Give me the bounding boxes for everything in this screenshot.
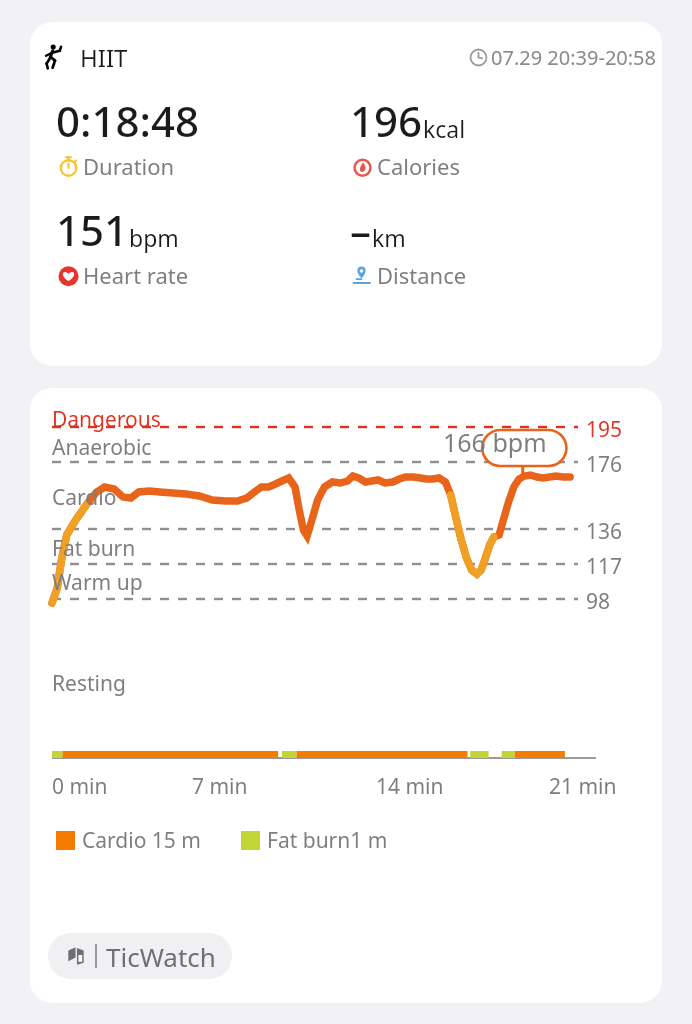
staticText: 117 [586,552,623,581]
other: Duration [56,154,81,179]
staticText: 14 min [376,772,444,801]
staticText: Distance [377,260,467,290]
staticText: 151 [56,201,129,258]
staticText: bpm [129,222,179,253]
staticText: Anaerobic [52,433,152,462]
staticText: Warm up [52,568,143,597]
staticText: kcal [423,113,466,144]
staticText: 195 [586,415,623,444]
other: Distance [350,263,375,288]
other: Calories [350,154,375,179]
staticText: Cardio 15 m [82,826,201,855]
staticText: 07.29 20:39-20:58 [491,44,656,71]
staticText: 0 min [52,772,108,801]
staticText: Resting [52,669,126,698]
staticText: Fat burn [52,534,136,563]
button[interactable]: 151 [56,201,346,290]
staticText: Cardio [52,483,117,512]
other: Heart rate [56,263,81,288]
other: TicWatch [64,944,88,968]
staticText: 7 min [192,772,248,801]
staticText: HIIT [80,41,128,74]
staticText: – [350,201,372,258]
staticText: 176 [586,450,623,479]
staticText: 196 [350,92,423,149]
button[interactable]: HIIT [30,22,662,366]
button[interactable]: TicWatch [48,933,232,979]
staticText: Dangerous [52,405,161,434]
staticText: Calories [377,151,460,181]
staticText: 98 [586,587,611,616]
button[interactable]: 196 [350,92,662,181]
staticText: TicWatch [106,939,216,974]
button[interactable]: Dangerous [30,388,662,1003]
button[interactable]: 0:18:48 [56,92,346,181]
button[interactable]: – [350,201,662,290]
staticText: Heart rate [83,260,189,290]
staticText: km [372,222,406,253]
staticText: 136 [586,517,623,546]
staticText: 166 bpm [443,425,547,459]
staticText: 21 min [549,772,617,801]
staticText: 0:18:48 [56,92,199,149]
staticText: Duration [83,151,175,181]
staticText: Fat burn1 m [267,826,388,855]
